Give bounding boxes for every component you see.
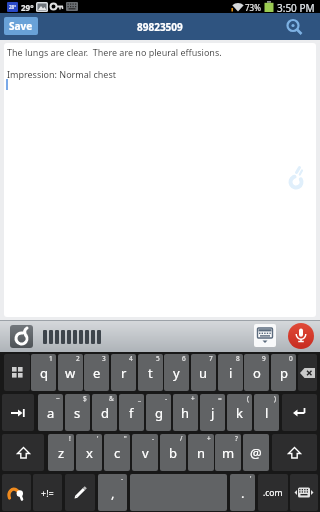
button[interactable] <box>298 354 317 391</box>
button[interactable] <box>283 16 307 38</box>
staticText: g <box>155 404 163 422</box>
button[interactable]: - <box>132 434 158 471</box>
staticText: r <box>121 364 127 382</box>
staticText: 0 <box>289 354 293 363</box>
staticText: 8 <box>236 354 240 363</box>
staticText: $ <box>83 394 87 403</box>
button[interactable] <box>2 474 31 511</box>
button[interactable]: " <box>104 434 130 471</box>
button[interactable]: - <box>146 394 171 431</box>
button[interactable]: / <box>160 434 186 471</box>
staticText: ) <box>274 394 276 403</box>
button[interactable]: 4 <box>111 354 136 391</box>
button[interactable] <box>254 324 276 347</box>
button[interactable]: ) <box>254 394 279 431</box>
staticText: x <box>86 444 93 462</box>
staticText: , <box>111 484 115 502</box>
staticText: _ <box>138 394 141 403</box>
button[interactable]: $ <box>65 394 90 431</box>
staticText: m <box>222 444 235 462</box>
button[interactable]: ( <box>227 394 252 431</box>
staticText: h <box>181 404 190 422</box>
staticText: s <box>74 404 81 422</box>
staticText: ' <box>250 474 252 483</box>
staticText: c <box>114 444 121 462</box>
staticText: 6 <box>182 354 186 363</box>
staticText: p <box>280 364 288 382</box>
button[interactable]: .com <box>258 474 288 511</box>
staticText: + <box>191 394 195 403</box>
button[interactable]: 2 <box>58 354 83 391</box>
button[interactable] <box>288 323 314 349</box>
button[interactable]: + <box>188 434 214 471</box>
button[interactable]: 3 <box>84 354 109 391</box>
button[interactable]: ? <box>215 434 241 471</box>
button[interactable] <box>290 474 318 511</box>
button[interactable]: 0 <box>271 354 296 391</box>
staticText: 29° <box>21 2 34 13</box>
button[interactable]: ~ <box>38 394 63 431</box>
staticText: o <box>253 364 261 382</box>
button[interactable] <box>4 354 30 391</box>
button[interactable]: 9 <box>244 354 269 391</box>
button[interactable]: +!= <box>33 474 62 511</box>
staticText: t <box>148 364 153 382</box>
staticText: i <box>229 364 233 382</box>
staticText: / <box>180 434 183 443</box>
button[interactable] <box>10 325 33 348</box>
staticText: 3:50 PM <box>277 1 315 15</box>
staticText: " <box>124 434 127 443</box>
staticText: ! <box>69 434 71 443</box>
button[interactable]: + <box>173 394 198 431</box>
button[interactable] <box>272 434 317 471</box>
staticText: .com <box>263 487 283 499</box>
button[interactable]: - <box>98 474 127 511</box>
staticText: 1 <box>49 354 53 363</box>
button[interactable]: 8 <box>218 354 243 391</box>
button[interactable]: Save <box>4 17 38 35</box>
button[interactable]: @ <box>243 434 269 471</box>
button[interactable] <box>2 434 44 471</box>
staticText: ( <box>247 394 249 403</box>
staticText: 4 <box>129 354 133 363</box>
staticText: 5 <box>156 354 160 363</box>
staticText: f <box>129 404 134 422</box>
button[interactable]: ! <box>48 434 74 471</box>
staticText: u <box>199 364 208 382</box>
staticText: n <box>197 444 206 462</box>
staticText: +!= <box>41 487 54 499</box>
button[interactable]: ' <box>76 434 102 471</box>
staticText: z <box>58 444 65 462</box>
staticText: @ <box>250 444 262 462</box>
button[interactable]: ' <box>230 474 255 511</box>
staticText: - <box>165 394 168 403</box>
staticText: & <box>109 394 114 403</box>
button[interactable]: & <box>92 394 117 431</box>
button[interactable] <box>282 394 317 431</box>
staticText: The lungs are clear. There are no pleura… <box>7 46 222 80</box>
staticText: b <box>169 444 177 462</box>
button[interactable]: = <box>200 394 225 431</box>
staticText: w <box>65 364 76 382</box>
button[interactable] <box>2 394 34 431</box>
staticText: ' <box>97 434 99 443</box>
button[interactable]: _ <box>119 394 144 431</box>
staticText: y <box>173 364 180 382</box>
staticText: 9 <box>262 354 266 363</box>
button[interactable]: 5 <box>138 354 163 391</box>
staticText: - <box>152 434 155 443</box>
staticText: a <box>47 404 55 422</box>
staticText: v <box>142 444 149 462</box>
staticText: 2 <box>76 354 80 363</box>
staticText: e <box>93 364 101 382</box>
button[interactable]: 1 <box>31 354 56 391</box>
button[interactable]: 7 <box>191 354 216 391</box>
button[interactable]: 6 <box>164 354 189 391</box>
staticText: . <box>241 484 245 502</box>
button[interactable] <box>65 474 95 511</box>
staticText: d <box>101 404 109 422</box>
staticText: k <box>236 404 243 422</box>
staticText: 73% <box>245 2 261 13</box>
staticText: = <box>218 394 222 403</box>
